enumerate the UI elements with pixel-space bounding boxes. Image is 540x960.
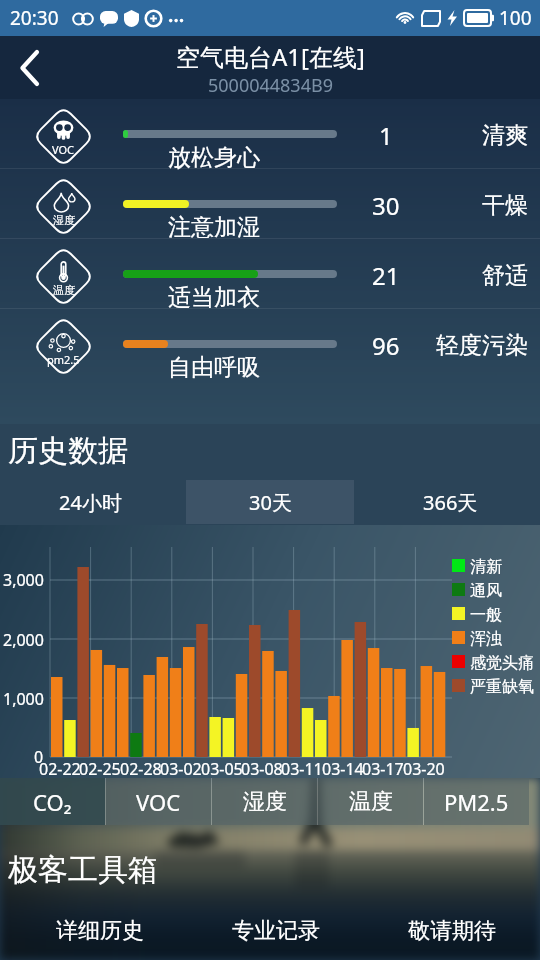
staticText: 通风 [470, 581, 502, 601]
staticText: 极客工具箱 [8, 851, 158, 889]
staticText: 96 [372, 329, 400, 362]
staticText: 2,000 [3, 629, 44, 651]
button[interactable]: 366天 [366, 480, 534, 524]
staticText: 湿度 [53, 213, 75, 227]
button[interactable]: 敬请期待 [364, 911, 540, 951]
staticText: 21 [372, 259, 400, 292]
staticText: 3,000 [3, 569, 44, 591]
staticText: 严重缺氧 [470, 677, 534, 697]
staticText: 温度 [349, 788, 393, 816]
staticText: 100 [499, 5, 532, 31]
button[interactable]: 30天 [186, 480, 354, 524]
button[interactable]: 24小时 [6, 480, 174, 524]
button[interactable]: 详细历史 [12, 911, 188, 951]
staticText: 20:30 [10, 5, 59, 31]
staticText: 1 [379, 119, 393, 152]
staticText: 03-17 [362, 758, 404, 780]
staticText: 空气电台A1[在线] [176, 40, 365, 73]
staticText: 清新 [470, 557, 502, 577]
staticText: 03-05 [201, 758, 243, 780]
staticText: 02-22 [39, 758, 81, 780]
staticText: 03-11 [281, 758, 323, 780]
staticText: 浑浊 [470, 629, 502, 649]
staticText: 轻度污染 [436, 331, 528, 360]
staticText: 湿度 [243, 788, 287, 816]
staticText: 03-08 [241, 758, 283, 780]
staticText: CO₂ [33, 787, 72, 817]
staticText: VOC [136, 787, 181, 817]
staticText: 感觉头痛 [470, 653, 534, 673]
staticText: PM2.5 [444, 787, 509, 817]
staticText: 03-14 [322, 758, 364, 780]
staticText: 一般 [470, 605, 502, 625]
button[interactable]: pm2.5 [0, 309, 540, 378]
staticText: 敬请期待 [408, 917, 496, 945]
button[interactable]: 湿度 [0, 169, 540, 238]
staticText: 30天 [249, 489, 292, 516]
staticText: 干燥 [482, 191, 528, 220]
button[interactable]: Back [0, 38, 60, 98]
staticText: 02-28 [120, 758, 162, 780]
staticText: 02-25 [79, 758, 121, 780]
staticText: 366天 [423, 489, 478, 516]
staticText: 放松身心 [168, 143, 260, 172]
button[interactable]: 温度 [318, 778, 423, 825]
staticText: VOC [52, 142, 75, 157]
button[interactable]: VOC [106, 778, 211, 825]
button[interactable]: VOC [0, 99, 540, 168]
staticText: 24小时 [59, 489, 122, 516]
staticText: pm2.5 [47, 352, 80, 367]
staticText: 清爽 [482, 121, 528, 150]
staticText: 1,000 [3, 688, 44, 710]
button[interactable]: PM2.5 [424, 778, 529, 825]
staticText: 温度 [53, 283, 75, 297]
staticText: 0 [34, 746, 44, 768]
staticText: 专业记录 [232, 917, 320, 945]
staticText: 03-02 [160, 758, 202, 780]
staticText: 03-20 [403, 758, 445, 780]
staticText: 注意加湿 [168, 213, 260, 242]
staticText: 历史数据 [8, 432, 128, 470]
button[interactable]: 专业记录 [188, 911, 364, 951]
staticText: 舒适 [482, 261, 528, 290]
staticText: 5000044834B9 [208, 73, 333, 98]
staticText: 自由呼吸 [168, 353, 260, 382]
staticText: 详细历史 [56, 917, 144, 945]
staticText: 适当加衣 [168, 283, 260, 312]
button[interactable]: 温度 [0, 239, 540, 308]
button[interactable]: 湿度 [212, 778, 317, 825]
button[interactable]: CO₂ [0, 778, 105, 825]
staticText: 30 [372, 189, 400, 222]
